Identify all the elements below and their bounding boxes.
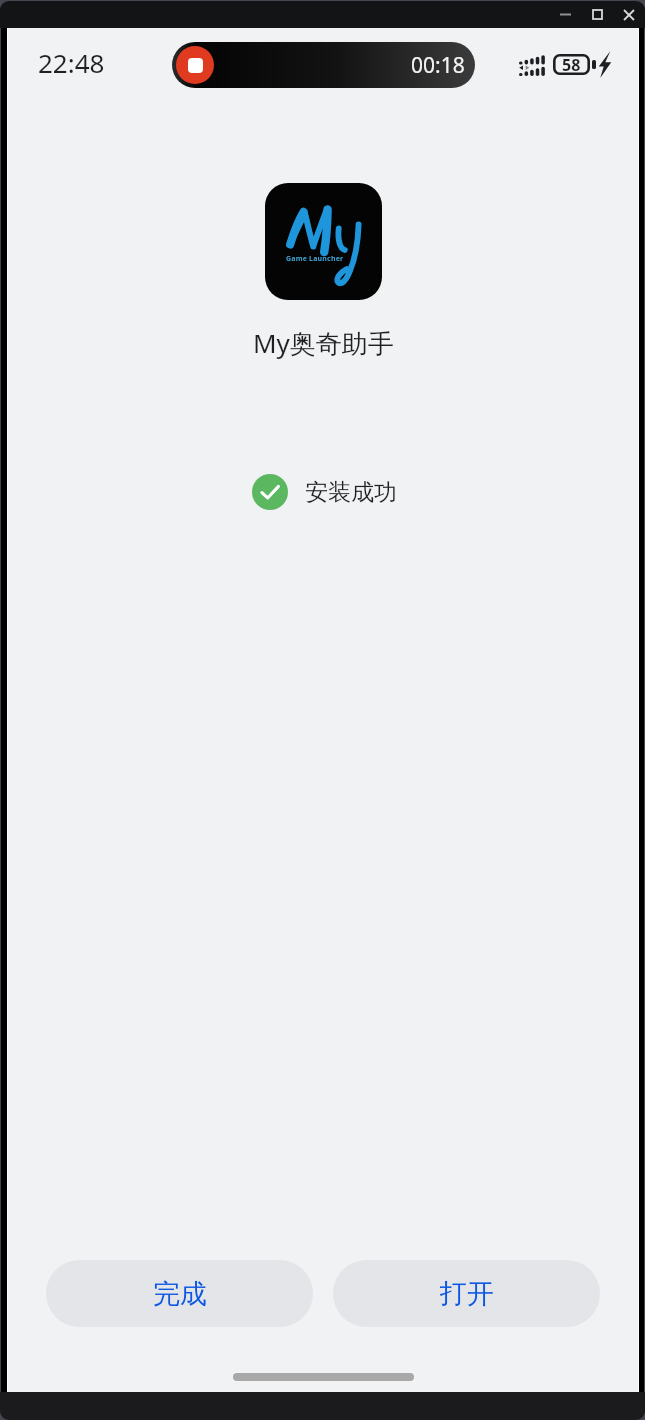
button[interactable]: Close — [613, 1, 645, 28]
staticText: 打开 — [440, 1277, 494, 1311]
staticText: My奥奇助手 — [253, 325, 394, 361]
staticText: 完成 — [153, 1277, 207, 1311]
staticText: 58 — [562, 54, 581, 75]
button[interactable]: Minimize — [549, 1, 581, 28]
button[interactable]: Maximize — [581, 1, 613, 28]
staticText: Game Launcher — [286, 254, 344, 264]
staticText: 00:18 — [411, 51, 465, 80]
button[interactable]: Stop recording — [172, 42, 475, 88]
button[interactable]: 打开 — [333, 1260, 600, 1327]
staticText: 安装成功 — [305, 478, 397, 507]
staticText: 22:48 — [38, 45, 105, 80]
button[interactable]: 完成 — [46, 1260, 313, 1327]
